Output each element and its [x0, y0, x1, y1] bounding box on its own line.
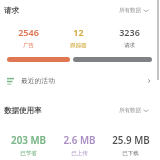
- button[interactable]: 最近的活动: [0, 73, 160, 88]
- button[interactable]: 所有数据: [116, 5, 152, 16]
- staticText: 请求: [124, 42, 135, 49]
- staticText: 请求: [4, 6, 19, 15]
- staticText: 25.9 MB: [112, 134, 150, 147]
- staticText: 所有数据: [119, 7, 141, 14]
- staticText: 3236: [119, 26, 140, 38]
- other: Open recent activity: [146, 78, 152, 84]
- staticText: 已节省: [20, 150, 37, 157]
- staticText: 数据使用率: [4, 106, 42, 115]
- staticText: 203 MB: [11, 134, 46, 147]
- staticText: 跟踪器: [70, 42, 87, 49]
- button[interactable]: 所有数据: [116, 105, 152, 116]
- staticText: 2.6 MB: [63, 134, 96, 147]
- staticText: 2546: [18, 26, 39, 38]
- staticText: 最近的活动: [21, 76, 55, 85]
- staticText: 已上传: [71, 150, 88, 157]
- staticText: 所有数据: [119, 107, 141, 114]
- staticText: 12: [73, 26, 84, 38]
- staticText: 广告: [23, 42, 34, 49]
- staticText: 已下载: [122, 150, 139, 157]
